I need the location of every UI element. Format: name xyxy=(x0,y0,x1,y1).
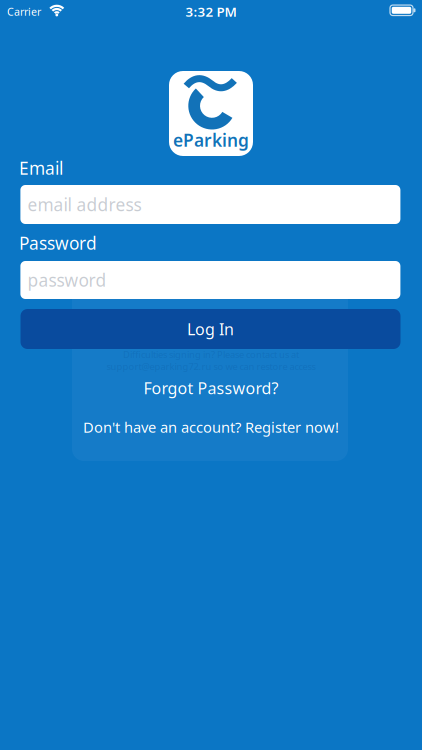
staticText: password xyxy=(27,268,106,291)
button[interactable]: Forgot Password? xyxy=(143,377,278,399)
staticText: Password xyxy=(19,231,97,254)
staticText: Don't have an account? Register now! xyxy=(83,417,339,437)
button[interactable]: Log In xyxy=(20,309,400,349)
staticText: Difficulties signing in? Please contact … xyxy=(123,348,299,361)
button[interactable]: Don't have an account? Register now! xyxy=(83,417,339,437)
staticText: email address xyxy=(27,193,141,216)
staticText: Email xyxy=(19,156,63,179)
button[interactable]: email address xyxy=(20,185,400,224)
staticText: eParking xyxy=(173,128,249,151)
staticText: Log In xyxy=(187,318,234,340)
staticText: 3:32 PM xyxy=(185,3,236,20)
staticText: Carrier xyxy=(7,4,41,19)
staticText: Forgot Password? xyxy=(143,377,278,399)
button[interactable]: password xyxy=(20,261,400,299)
